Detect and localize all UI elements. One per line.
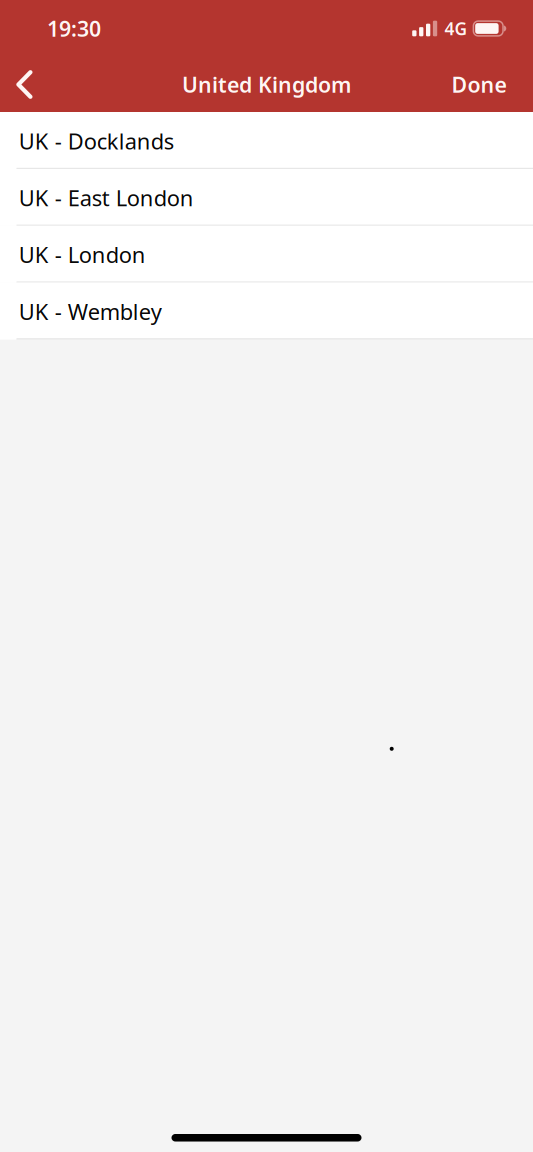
staticText: 19:30 bbox=[47, 14, 101, 43]
staticText: UK - Docklands bbox=[19, 126, 174, 156]
staticText: UK - East London bbox=[19, 183, 194, 213]
staticText: UK - London bbox=[19, 240, 146, 269]
staticText: UK - Wembley bbox=[19, 297, 162, 326]
button[interactable]: UK - Docklands bbox=[0, 112, 533, 169]
button[interactable]: UK - Wembley bbox=[0, 283, 533, 339]
button[interactable]: Done bbox=[429, 57, 533, 112]
button[interactable]: UK - London bbox=[0, 226, 533, 283]
button[interactable]: Back bbox=[0, 57, 54, 112]
staticText: United Kingdom bbox=[182, 70, 351, 99]
staticText: Done bbox=[451, 70, 506, 99]
staticText: 4G bbox=[444, 17, 467, 40]
button[interactable]: UK - East London bbox=[0, 169, 533, 226]
